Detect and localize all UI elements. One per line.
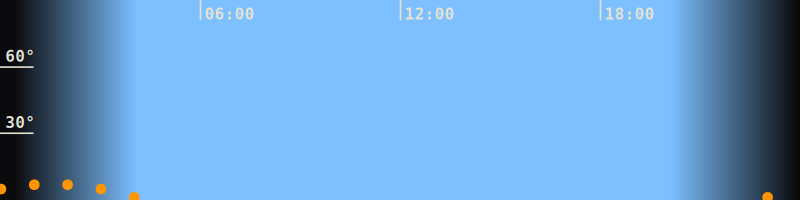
staticText: 06:00 [205,5,255,23]
staticText: 12:00 [405,5,455,23]
staticText: 30° [5,113,35,132]
staticText: 18:00 [605,5,655,23]
staticText: 60° [5,47,35,65]
